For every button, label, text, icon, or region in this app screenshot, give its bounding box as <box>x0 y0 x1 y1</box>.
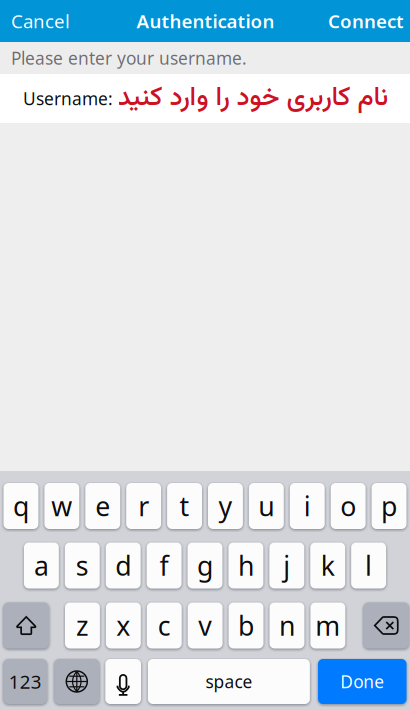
staticText: j <box>283 548 290 583</box>
button[interactable]: w <box>44 483 79 529</box>
staticText: q <box>13 488 29 524</box>
button[interactable]: Dictate <box>105 659 141 704</box>
staticText: f <box>160 548 169 583</box>
button[interactable]: n <box>269 602 304 648</box>
staticText: Done <box>340 670 384 693</box>
staticText: d <box>115 548 131 583</box>
staticText: نام کاربری خود را وارد کنید <box>117 78 388 119</box>
staticText: e <box>95 488 110 524</box>
staticText: k <box>321 548 335 583</box>
staticText: v <box>198 608 212 643</box>
button[interactable]: space <box>148 659 310 704</box>
button[interactable]: h <box>228 542 263 588</box>
staticText: Username: <box>23 87 113 110</box>
staticText: Authentication <box>136 9 274 33</box>
button[interactable]: l <box>351 542 386 588</box>
staticText: l <box>365 548 372 583</box>
button[interactable]: v <box>188 602 223 648</box>
staticText: Please enter your username. <box>11 46 247 69</box>
staticText: Connect <box>328 9 404 33</box>
button[interactable]: c <box>147 602 182 648</box>
staticText: c <box>158 608 171 643</box>
button[interactable]: Cancel <box>0 0 81 42</box>
staticText: a <box>34 548 49 583</box>
staticText: 123 <box>9 669 42 694</box>
staticText: p <box>381 488 397 524</box>
button[interactable]: r <box>126 483 161 529</box>
button[interactable]: Next keyboard <box>54 659 99 704</box>
staticText: t <box>179 488 189 524</box>
button[interactable]: i <box>290 483 325 529</box>
staticText: h <box>238 548 254 583</box>
button[interactable]: Numbers <box>3 659 47 704</box>
staticText: u <box>258 488 274 524</box>
button[interactable]: q <box>3 483 38 529</box>
button[interactable]: j <box>269 542 304 588</box>
staticText: y <box>218 488 232 524</box>
staticText: n <box>279 608 295 643</box>
staticText: x <box>116 608 130 643</box>
button[interactable]: a <box>24 542 59 588</box>
button[interactable]: Done <box>318 659 406 704</box>
button[interactable]: Connect <box>322 0 410 42</box>
staticText: r <box>138 488 149 524</box>
button[interactable]: d <box>106 542 141 588</box>
button[interactable]: g <box>187 542 222 588</box>
staticText: b <box>238 608 254 643</box>
button[interactable]: k <box>310 542 345 588</box>
staticText: m <box>315 608 340 643</box>
staticText: i <box>304 488 311 524</box>
staticText: s <box>76 548 89 583</box>
button[interactable]: s <box>65 542 100 588</box>
button[interactable]: b <box>229 602 263 648</box>
staticText: w <box>51 488 72 524</box>
staticText: o <box>340 488 356 524</box>
button[interactable]: Shift <box>3 602 49 648</box>
button[interactable]: e <box>85 483 120 529</box>
button[interactable]: x <box>106 602 141 648</box>
staticText: Cancel <box>11 9 70 33</box>
button[interactable]: Delete <box>363 602 409 648</box>
button[interactable]: z <box>65 602 100 648</box>
button[interactable]: f <box>147 542 181 588</box>
staticText: g <box>197 548 213 583</box>
button[interactable]: m <box>310 602 345 648</box>
button[interactable]: t <box>167 483 202 529</box>
button[interactable]: o <box>331 483 366 529</box>
staticText: space <box>205 670 252 693</box>
button[interactable]: u <box>249 483 284 529</box>
button[interactable]: y <box>208 483 243 529</box>
button[interactable]: p <box>372 483 406 529</box>
staticText: z <box>76 608 89 643</box>
